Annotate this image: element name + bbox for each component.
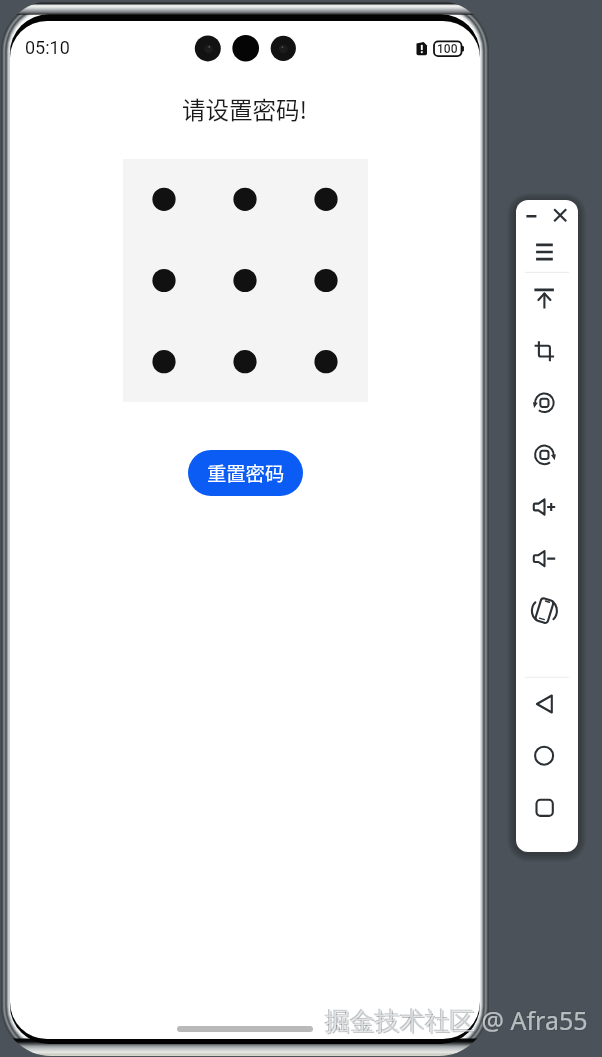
button[interactable]: Pattern lock grid	[123, 159, 368, 402]
button[interactable]: Minimize emulator toolbar	[516, 200, 578, 235]
staticText: 掘金技术社区 @ Afra55	[326, 1004, 589, 1038]
button[interactable]: Screenshot	[516, 332, 578, 372]
button[interactable]: Back	[516, 685, 578, 725]
staticText: 掘金技术社区 @ Afra55	[324, 1002, 587, 1036]
button[interactable]: Rotate left	[516, 384, 578, 424]
staticText: 重置密码	[207, 459, 285, 487]
button[interactable]: Volume down	[516, 540, 578, 580]
button[interactable]: Recent apps	[516, 789, 578, 829]
staticText: 100	[437, 42, 458, 56]
button[interactable]: Home	[516, 737, 578, 777]
button[interactable]: 重置密码	[188, 450, 303, 496]
button[interactable]: Rotate right	[516, 436, 578, 476]
button[interactable]: Shake	[516, 592, 578, 632]
button[interactable]: Volume up	[516, 488, 578, 528]
staticText: 掘金技术社区 @ Afra55	[325, 1003, 588, 1037]
staticText: 请设置密码!	[182, 92, 308, 126]
staticText: 05:10	[25, 37, 70, 58]
button[interactable]: Menu	[516, 235, 578, 269]
button[interactable]: Upload	[516, 280, 578, 320]
